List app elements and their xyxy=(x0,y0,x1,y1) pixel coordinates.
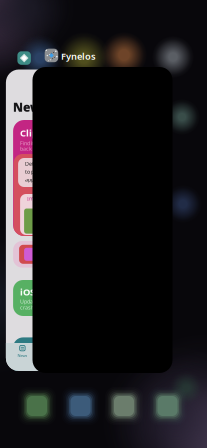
staticText: Update xyxy=(20,298,38,305)
staticText: Ima xyxy=(27,195,37,202)
button[interactable]: News xyxy=(17,345,27,358)
staticText: Fynelos xyxy=(61,50,96,62)
staticText: Clips xyxy=(20,127,43,139)
staticText: Detr xyxy=(25,160,36,167)
staticText: to pla xyxy=(25,168,38,175)
button[interactable] xyxy=(32,67,172,373)
staticText: News xyxy=(17,353,27,358)
staticText: iOS 26 xyxy=(20,286,47,298)
button[interactable]: New in iOS xyxy=(6,69,144,371)
staticText: New in iOS xyxy=(13,99,80,115)
staticText: Find it right xyxy=(20,140,46,147)
staticText: back here xyxy=(20,145,44,152)
staticText: app o xyxy=(25,176,38,183)
staticText: crash f xyxy=(20,304,37,311)
